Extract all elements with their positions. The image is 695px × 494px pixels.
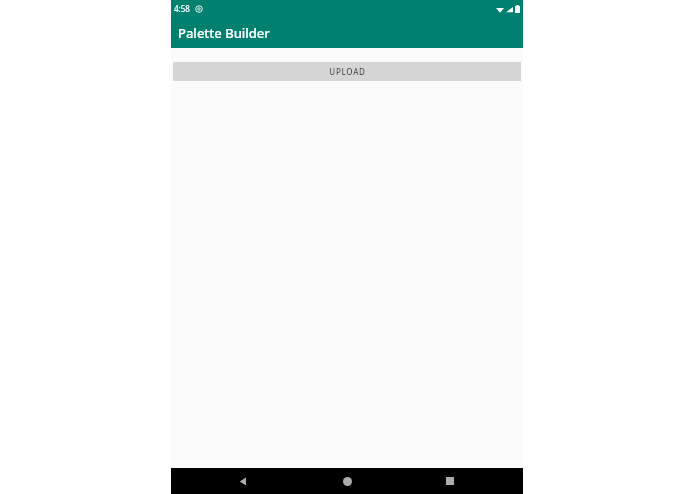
staticText: UPLOAD: [329, 66, 366, 77]
staticText: Palette Builder: [178, 24, 270, 42]
staticText: 4:58: [174, 3, 190, 14]
button[interactable]: Recent apps: [437, 468, 463, 494]
button[interactable]: UPLOAD: [173, 62, 521, 81]
button[interactable]: Back: [230, 468, 256, 494]
button[interactable]: Home: [334, 468, 360, 494]
